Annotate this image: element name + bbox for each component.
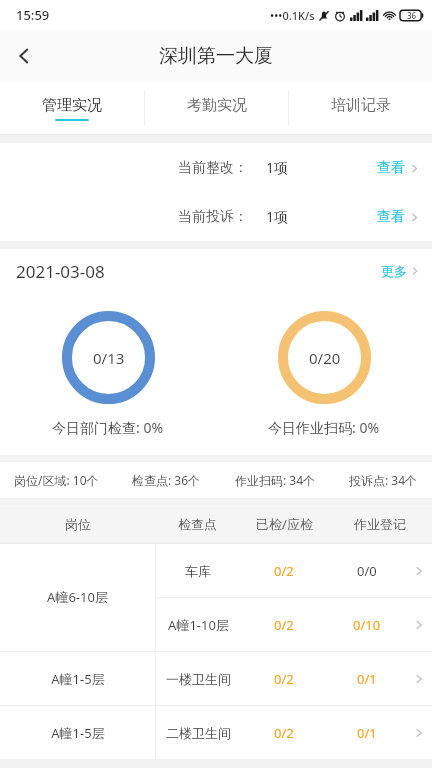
staticText: 0/1: [357, 670, 377, 688]
staticText: 0/10: [353, 616, 381, 634]
staticText: A幢1-10层: [168, 616, 229, 634]
staticText: 当前整改：: [178, 159, 248, 177]
button[interactable]: A幢1-10层: [156, 598, 432, 651]
staticText: 更多: [381, 263, 407, 279]
staticText: 作业扫码: 34个: [235, 472, 316, 488]
button[interactable]: 查看: [365, 200, 432, 234]
button[interactable]: 车库: [156, 544, 432, 597]
staticText: 已检/应检: [256, 515, 313, 533]
staticText: 岗位/区域: 10个: [14, 472, 99, 488]
staticText: 岗位: [65, 516, 91, 532]
staticText: 检查点: 36个: [132, 472, 201, 488]
staticText: 投诉点: 34个: [349, 472, 418, 488]
staticText: 0/13: [93, 348, 125, 368]
staticText: 当前投诉：: [178, 208, 248, 226]
staticText: 考勤实况: [187, 96, 247, 115]
staticText: 0/0: [357, 562, 377, 580]
button[interactable]: 培训记录: [289, 82, 432, 134]
button[interactable]: 考勤实况: [145, 82, 288, 134]
staticText: 0/2: [274, 616, 294, 634]
staticText: 今日部门检查: 0%: [52, 418, 164, 437]
staticText: A幢1-5层: [51, 724, 105, 742]
staticText: 0/2: [274, 670, 294, 688]
staticText: 1项: [266, 158, 289, 177]
button[interactable]: 查看: [365, 151, 432, 185]
staticText: 36: [407, 10, 417, 21]
staticText: 2021-03-08: [16, 260, 105, 283]
staticText: A幢1-5层: [51, 670, 105, 688]
button[interactable]: 管理实况: [0, 82, 144, 134]
staticText: 查看: [377, 208, 405, 226]
staticText: 0/2: [274, 562, 294, 580]
staticText: 培训记录: [331, 96, 391, 115]
staticText: 今日作业扫码: 0%: [268, 418, 380, 437]
staticText: 查看: [377, 159, 405, 177]
staticText: 0/1: [357, 724, 377, 742]
staticText: 车库: [185, 563, 211, 579]
staticText: 作业登记: [354, 516, 406, 532]
button[interactable]: 二楼卫生间: [156, 706, 432, 759]
staticText: 0/2: [274, 724, 294, 742]
staticText: 0/20: [309, 348, 341, 368]
staticText: 检查点: [178, 516, 217, 532]
staticText: 管理实况: [42, 96, 102, 115]
staticText: •••0.1K/s: [270, 8, 315, 23]
staticText: 深圳第一大厦: [159, 44, 273, 68]
staticText: 15:59: [16, 6, 50, 24]
button[interactable]: 更多: [369, 255, 432, 287]
staticText: 二楼卫生间: [166, 725, 231, 741]
staticText: 一楼卫生间: [166, 671, 231, 687]
button[interactable]: 一楼卫生间: [156, 652, 432, 705]
staticText: 1项: [266, 207, 289, 226]
button[interactable]: Back: [0, 32, 48, 80]
staticText: A幢6-10层: [47, 588, 108, 606]
